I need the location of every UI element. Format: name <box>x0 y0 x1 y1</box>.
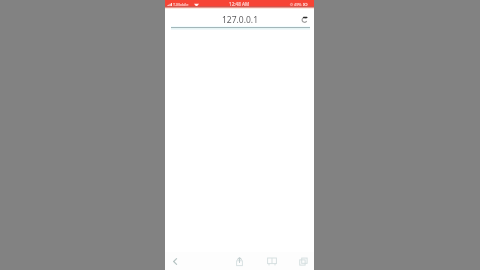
staticText: 12:48 AM <box>229 1 250 7</box>
button[interactable]: Share <box>232 254 246 268</box>
staticText: 127.0.0.1 <box>222 14 259 26</box>
staticText: T-Mobile <box>173 2 189 7</box>
button[interactable]: Tabs <box>296 254 310 268</box>
button[interactable]: Reload <box>299 14 310 25</box>
button[interactable]: Address field <box>165 9 314 27</box>
staticText: 49% <box>294 2 302 7</box>
button[interactable]: Bookmarks <box>265 254 279 268</box>
button[interactable]: Back <box>168 254 182 268</box>
